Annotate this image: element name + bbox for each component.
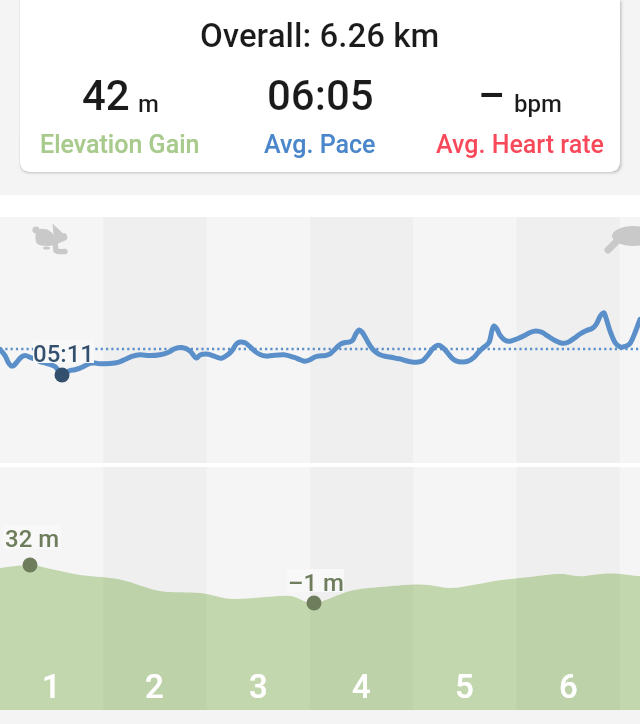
staticText: 06:05 xyxy=(267,71,374,120)
staticText: 5 xyxy=(455,667,474,706)
staticText: Avg. Heart rate xyxy=(436,130,605,159)
staticText: – xyxy=(478,71,506,120)
button[interactable]: – xyxy=(420,71,620,159)
staticText: Overall: 6.26 km xyxy=(200,16,440,55)
button[interactable]: 06:05 xyxy=(220,71,420,159)
staticText: m xyxy=(138,90,159,118)
staticText: 6 xyxy=(559,667,578,706)
staticText: 3 xyxy=(249,667,268,706)
staticText: 05:11 xyxy=(33,340,94,363)
staticText: 42 xyxy=(82,71,130,120)
staticText: –1 m xyxy=(288,569,344,592)
staticText: 4 xyxy=(352,667,371,706)
staticText: 32 m xyxy=(5,525,60,549)
button[interactable]: 42 xyxy=(20,71,220,159)
other: Pace chart xyxy=(0,217,640,463)
staticText: Elevation Gain xyxy=(40,130,200,159)
staticText: bpm xyxy=(514,90,562,118)
staticText: Avg. Pace xyxy=(264,130,376,159)
staticText: 1 xyxy=(42,667,61,706)
staticText: 2 xyxy=(145,667,164,706)
other: Elevation chart xyxy=(0,467,640,710)
button[interactable]: Overall: 6.26 km xyxy=(20,0,620,172)
